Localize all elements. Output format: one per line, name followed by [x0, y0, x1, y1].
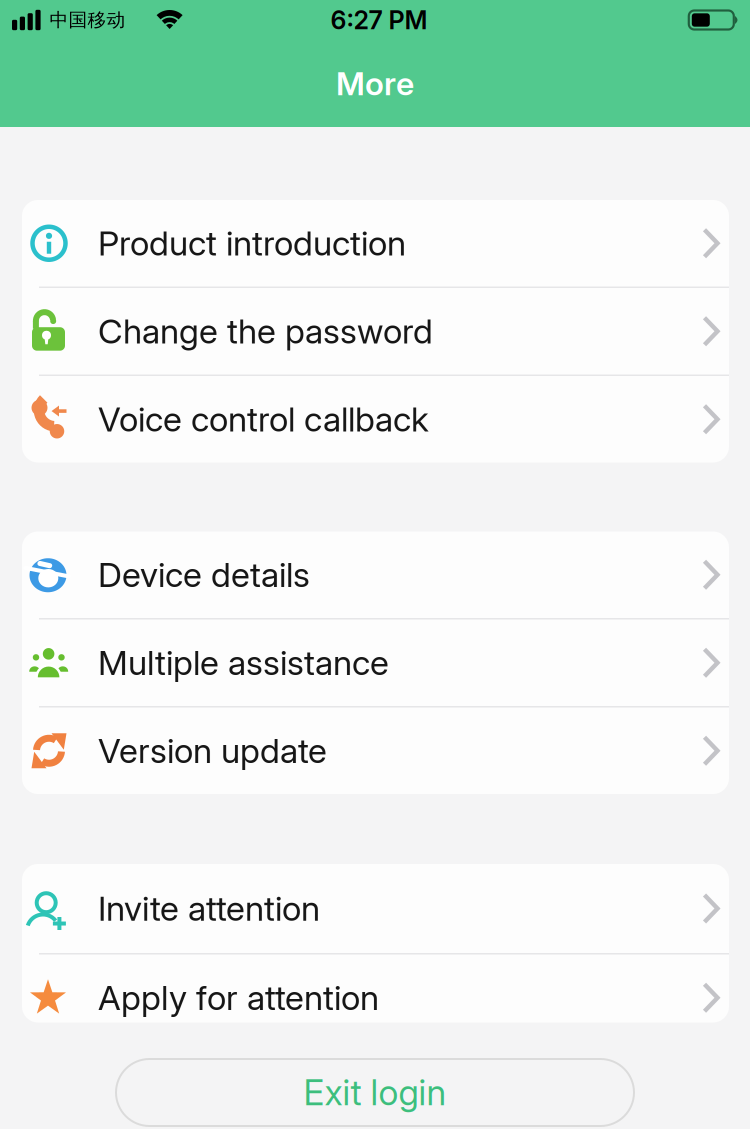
staticText: More [336, 64, 414, 103]
button[interactable]: Version update [22, 707, 729, 794]
button[interactable]: Exit login [116, 1059, 634, 1126]
button[interactable]: Invite attention [22, 864, 729, 953]
button[interactable]: Apply for attention [22, 954, 729, 1041]
staticText: Version update [98, 730, 327, 771]
staticText: Product introduction [98, 223, 406, 264]
staticText: Exit login [303, 1071, 446, 1114]
staticText: 中国移动 [50, 8, 126, 32]
staticText: Device details [98, 554, 310, 595]
staticText: Multiple assistance [98, 642, 389, 683]
button[interactable]: Change the password [22, 288, 729, 374]
staticText: 6:27 PM [330, 5, 427, 35]
button[interactable]: Product introduction [22, 200, 729, 286]
button[interactable]: Device details [22, 531, 729, 618]
button[interactable]: Multiple assistance [22, 619, 729, 706]
staticText: Voice control callback [98, 399, 429, 440]
staticText: Change the password [98, 311, 433, 352]
staticText: Apply for attention [98, 977, 379, 1018]
button[interactable]: Voice control callback [22, 376, 729, 462]
staticText: Invite attention [98, 888, 320, 929]
